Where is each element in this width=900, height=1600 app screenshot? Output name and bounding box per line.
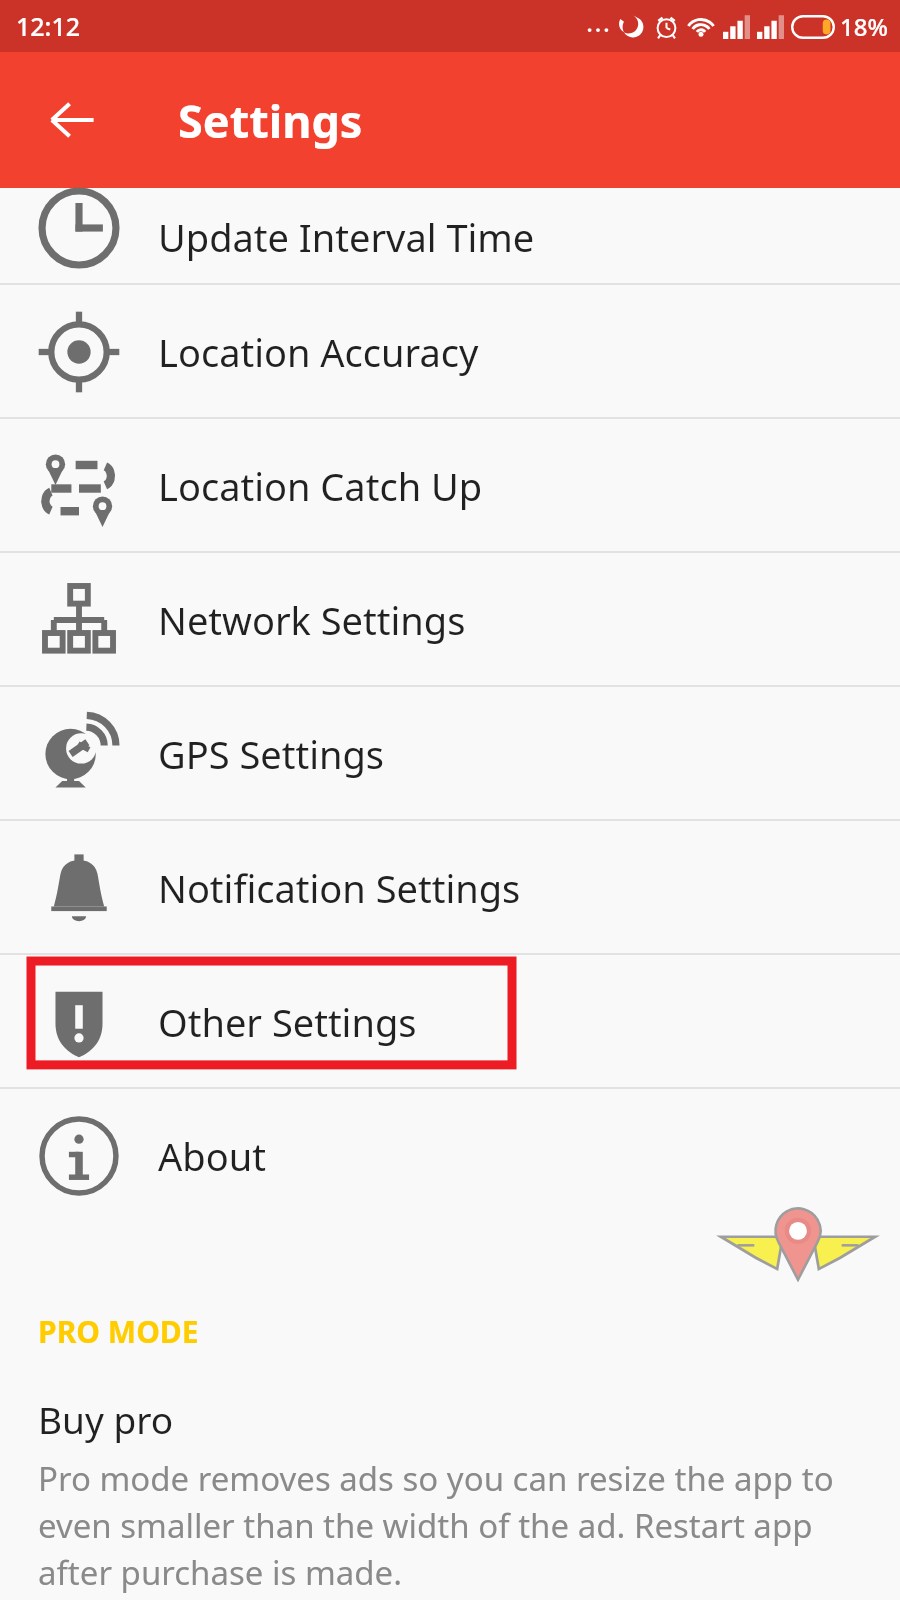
staticText: Settings — [178, 90, 363, 151]
button[interactable]: Notification Settings — [0, 821, 900, 955]
button[interactable]: Other Settings — [0, 955, 900, 1089]
staticText: Other Settings — [158, 996, 417, 1048]
staticText: Buy pro — [38, 1394, 174, 1444]
staticText: About — [158, 1130, 266, 1182]
staticText: Location Catch Up — [158, 460, 483, 512]
button[interactable]: GPS Settings — [0, 687, 900, 821]
button[interactable]: Back — [30, 78, 114, 162]
button[interactable]: Update Interval Time — [0, 188, 900, 285]
staticText: 12:12 — [16, 9, 81, 43]
staticText: PRO MODE — [38, 1311, 199, 1352]
staticText: Update Interval Time — [158, 211, 535, 263]
button[interactable]: Buy pro — [0, 1394, 900, 1595]
button[interactable]: Location Catch Up — [0, 419, 900, 553]
button[interactable]: About — [0, 1089, 900, 1223]
staticText: Pro mode removes ads so you can resize t… — [38, 1456, 862, 1595]
staticText: Notification Settings — [158, 862, 521, 914]
button[interactable]: Location Accuracy — [0, 285, 900, 419]
staticText: Network Settings — [158, 594, 466, 646]
staticText: GPS Settings — [158, 728, 384, 780]
staticText: Location Accuracy — [158, 326, 479, 378]
staticText: 18% — [840, 10, 888, 43]
button[interactable]: Network Settings — [0, 553, 900, 687]
